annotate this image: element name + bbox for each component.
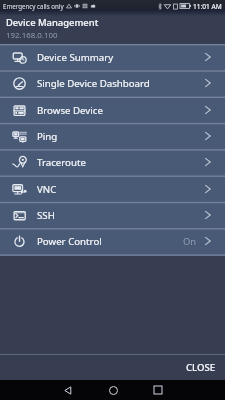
button[interactable]: Browse Device <box>0 97 225 123</box>
staticText: CLOSE <box>186 361 216 374</box>
staticText: Power Control <box>37 235 102 248</box>
staticText: Ping <box>37 130 58 143</box>
staticText: 192.168.0.100 <box>6 30 58 41</box>
button[interactable]: SSH <box>0 202 225 228</box>
button[interactable]: Back <box>58 380 78 400</box>
button[interactable]: Recents <box>148 380 168 400</box>
button[interactable]: Traceroute <box>0 149 225 175</box>
staticText: Traceroute <box>37 156 86 169</box>
button[interactable]: Device Summary <box>0 44 225 70</box>
button[interactable]: Home <box>103 380 123 400</box>
staticText: Browse Device <box>37 104 103 117</box>
staticText: SSH <box>37 209 55 222</box>
staticText: VNC <box>37 183 57 196</box>
staticText: Device Management <box>6 16 99 29</box>
button[interactable]: CLOSE <box>175 356 225 379</box>
staticText: 11:01 AM <box>193 2 222 11</box>
staticText: Emergency calls only <box>3 2 64 10</box>
button[interactable]: Single Device Dashboard <box>0 70 225 96</box>
staticText: On <box>183 235 197 248</box>
staticText: Single Device Dashboard <box>37 77 150 90</box>
button[interactable]: Ping <box>0 123 225 149</box>
staticText: Device Summary <box>37 51 114 64</box>
button[interactable]: VNC <box>0 176 225 202</box>
button[interactable]: Power Control <box>0 228 225 254</box>
